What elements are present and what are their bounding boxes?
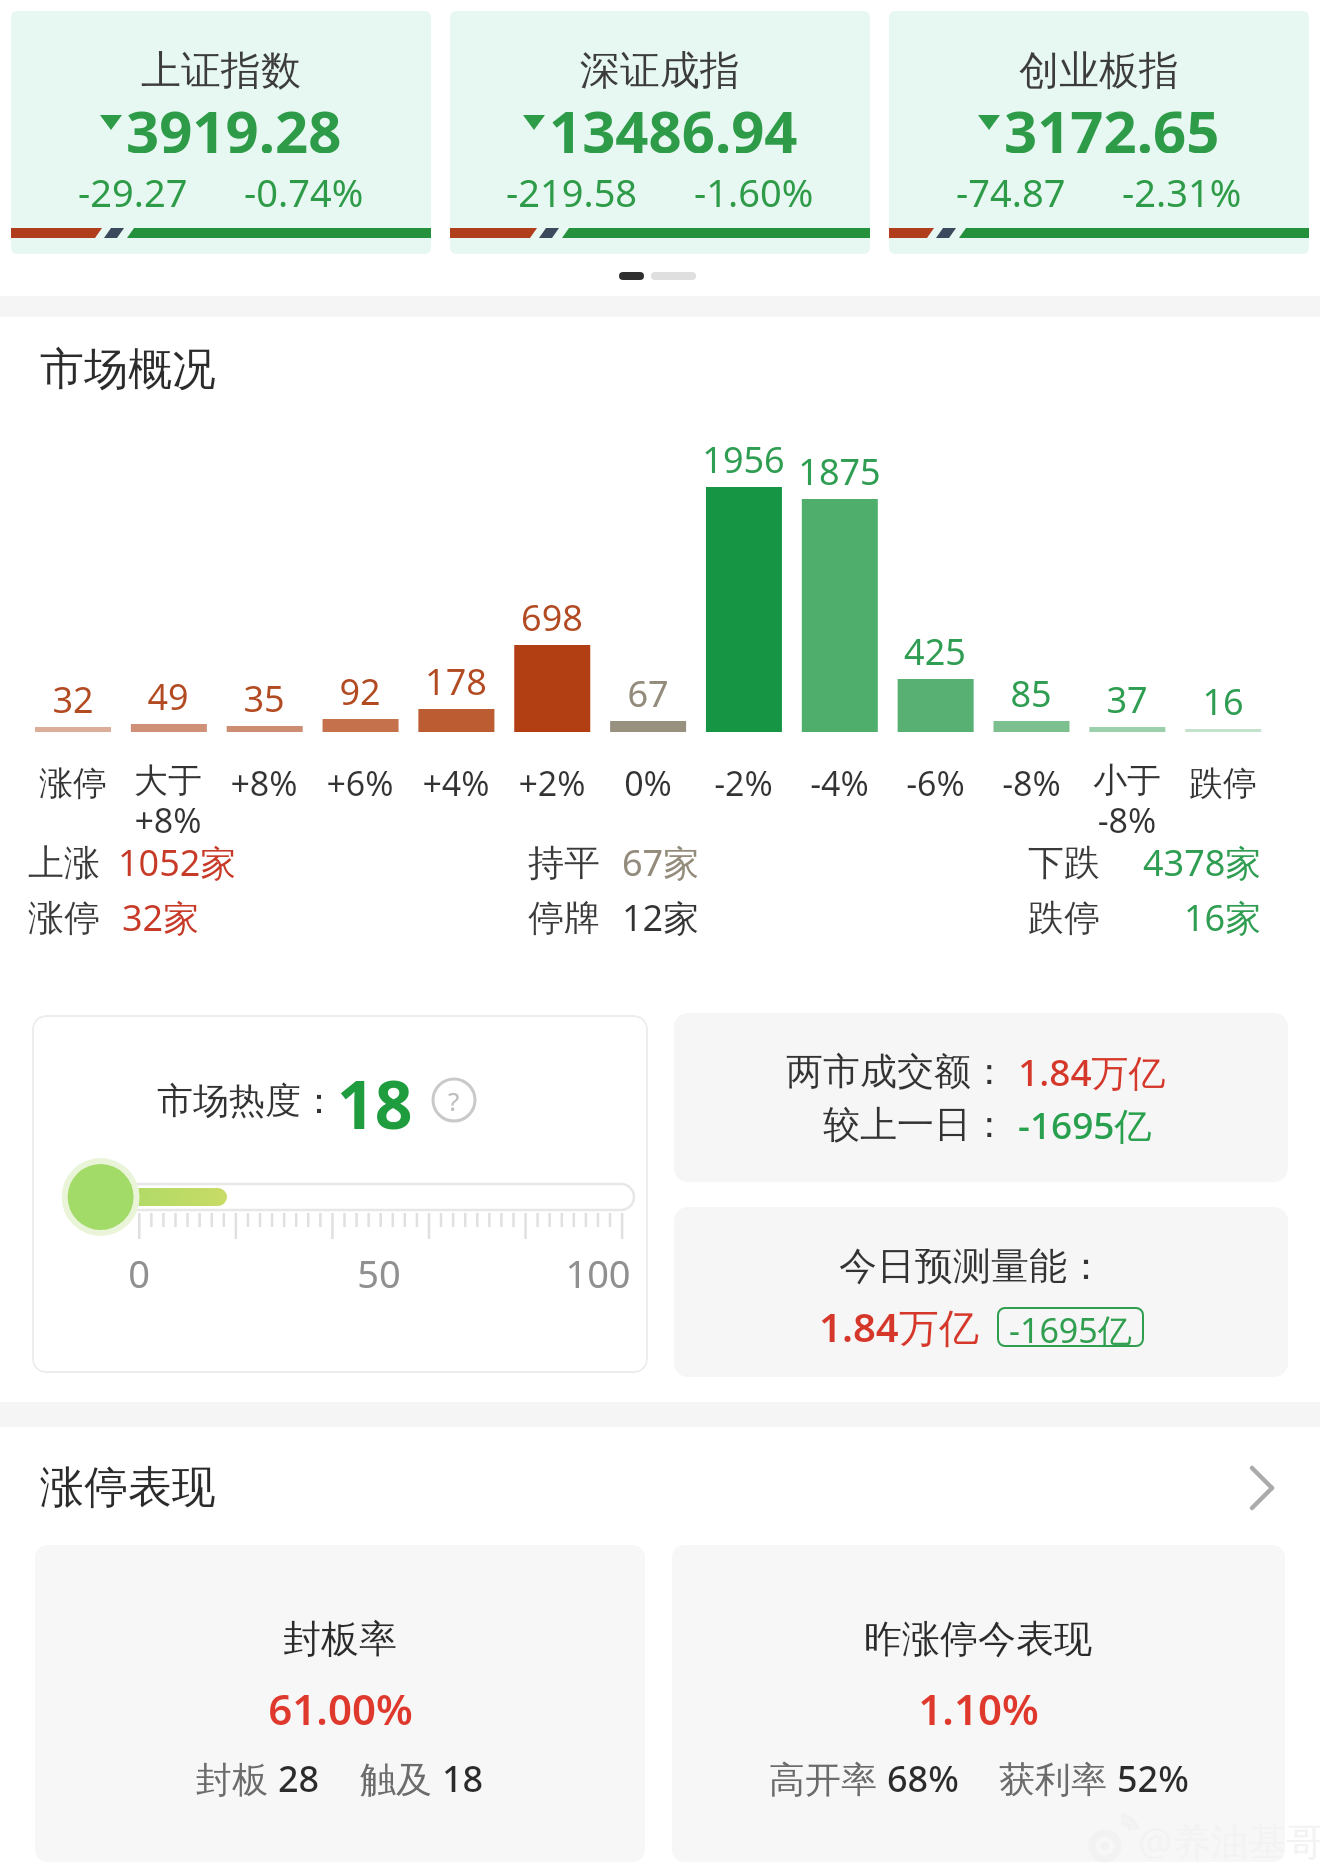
button[interactable] <box>11 11 431 254</box>
staticText: 1052家 <box>118 838 237 887</box>
staticText: 两市成交额： <box>786 1048 1008 1095</box>
staticText: 92 <box>339 667 381 716</box>
staticText: 今日预测量能： <box>839 1242 1105 1290</box>
staticText: 深证成指 <box>580 45 740 95</box>
staticText: -2.31% <box>1122 166 1242 216</box>
staticText: 停牌 <box>528 895 600 940</box>
staticText: 37 <box>1106 675 1148 724</box>
staticText: 18 <box>337 1058 413 1142</box>
button[interactable] <box>672 1545 1285 1862</box>
staticText: 28 <box>278 1754 320 1803</box>
staticText: 100 <box>565 1247 631 1299</box>
staticText: -74.87 <box>956 166 1066 216</box>
staticText: +8% <box>230 760 298 806</box>
staticText: 4378家 <box>1143 838 1262 887</box>
staticText: 跌停 <box>1189 762 1257 805</box>
staticText: 85 <box>1010 669 1052 718</box>
staticText: 68% <box>887 1754 959 1803</box>
staticText: -1.60% <box>694 166 814 216</box>
staticText: 18 <box>442 1754 484 1803</box>
staticText: -0.74% <box>244 166 364 216</box>
staticText: 3919.28 <box>126 91 342 153</box>
staticText: 涨停 <box>39 762 107 805</box>
staticText: 67家 <box>622 838 700 887</box>
staticText: ? <box>448 1083 460 1118</box>
staticText: 1875 <box>798 447 881 496</box>
staticText: 50 <box>357 1247 401 1299</box>
staticText: 触及 <box>360 1754 442 1803</box>
staticText: 获利率 <box>999 1754 1117 1803</box>
staticText: 13486.94 <box>549 91 798 153</box>
staticText: 跌停 <box>1028 895 1100 940</box>
staticText: -1695亿 <box>1018 1099 1152 1150</box>
staticText: -219.58 <box>506 166 638 216</box>
staticText: 高开率 <box>769 1754 887 1803</box>
staticText: 32家 <box>122 893 200 942</box>
staticText: 61.00% <box>268 1680 413 1737</box>
staticText: 0% <box>624 760 672 806</box>
staticText: -8% <box>1002 760 1061 806</box>
button[interactable] <box>889 11 1309 254</box>
staticText: 35 <box>243 674 285 723</box>
button[interactable] <box>0 1450 1320 1530</box>
staticText: 32 <box>52 675 94 724</box>
staticText: 市场概况 <box>40 342 216 397</box>
staticText: 下跌 <box>1028 840 1100 885</box>
staticText: 12家 <box>622 893 700 942</box>
staticText: +4% <box>422 760 490 806</box>
staticText: 1.84万亿 <box>1018 1046 1166 1097</box>
staticText: 178 <box>425 657 487 706</box>
staticText: 涨停表现 <box>40 1460 216 1515</box>
staticText: 3172.65 <box>1004 91 1220 153</box>
staticText: 昨涨停今表现 <box>864 1615 1092 1663</box>
staticText: 49 <box>147 672 189 721</box>
button[interactable] <box>35 1545 645 1862</box>
staticText: 涨停 <box>28 895 100 940</box>
staticText: 封板率 <box>283 1615 397 1663</box>
staticText: 0 <box>128 1247 150 1299</box>
staticText: 较上一日： <box>823 1101 1008 1148</box>
staticText: 1.84万亿 <box>819 1299 979 1354</box>
staticText: @养油基哥 <box>1138 1814 1320 1866</box>
staticText: 52% <box>1117 1754 1189 1803</box>
staticText: 封板 <box>196 1754 278 1803</box>
button[interactable] <box>674 1013 1288 1182</box>
staticText: -6% <box>906 760 965 806</box>
staticText: -4% <box>810 760 869 806</box>
staticText: 1956 <box>702 435 785 484</box>
staticText: 上证指数 <box>141 45 301 95</box>
staticText: 小于 -8% <box>1093 759 1161 843</box>
button[interactable] <box>450 11 870 254</box>
staticText: 上涨 <box>28 840 100 885</box>
staticText: 698 <box>521 593 583 642</box>
staticText: 16家 <box>1184 893 1262 942</box>
button[interactable] <box>32 1015 648 1373</box>
staticText: +6% <box>326 760 394 806</box>
staticText: -1695亿 <box>1009 1307 1132 1347</box>
staticText: +2% <box>518 760 586 806</box>
staticText: 67 <box>627 669 669 718</box>
staticText: 16 <box>1202 677 1244 726</box>
staticText: -2% <box>714 760 773 806</box>
staticText: 425 <box>904 627 966 676</box>
staticText: -29.27 <box>78 166 188 216</box>
staticText: 1.10% <box>918 1680 1039 1737</box>
button[interactable] <box>674 1207 1288 1377</box>
staticText: 市场热度： <box>157 1078 337 1123</box>
staticText: 大于 +8% <box>134 759 202 843</box>
staticText: 创业板指 <box>1019 45 1179 95</box>
staticText: 持平 <box>528 840 600 885</box>
